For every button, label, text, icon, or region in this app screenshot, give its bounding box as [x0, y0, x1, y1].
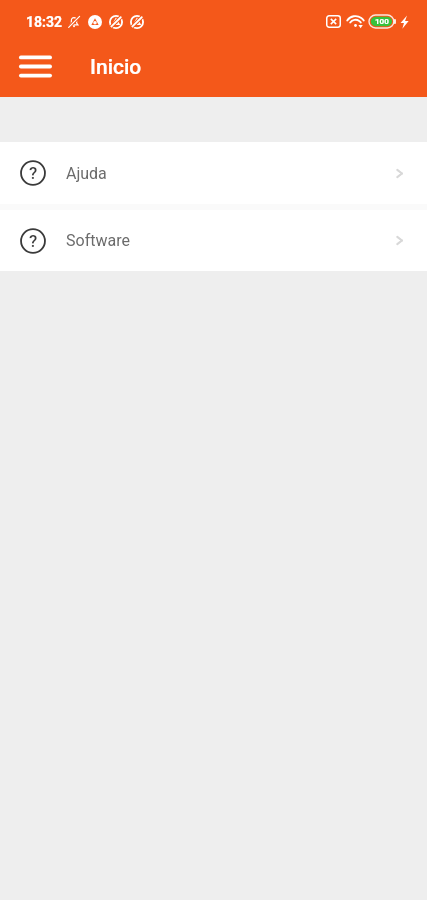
staticText: ?	[29, 231, 38, 251]
staticText: ?	[29, 163, 38, 183]
staticText: 100	[375, 17, 389, 26]
staticText: Ajuda	[66, 164, 107, 183]
button[interactable]: Open navigation menu	[9, 42, 61, 94]
button[interactable]: Help	[0, 210, 427, 271]
staticText: Software	[66, 231, 130, 250]
button[interactable]: Help	[0, 142, 427, 204]
staticText: Inicio	[90, 55, 142, 80]
other: Help	[20, 228, 46, 254]
other: Help	[20, 160, 46, 186]
staticText: 18:32	[26, 14, 63, 30]
